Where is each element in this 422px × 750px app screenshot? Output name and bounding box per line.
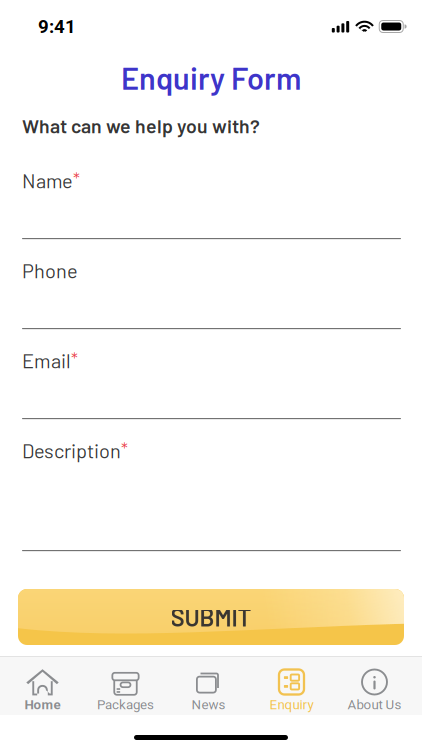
button[interactable]: SUBMIT <box>18 589 404 645</box>
staticText: 9:41 <box>38 16 76 37</box>
staticText: Packages <box>97 697 154 713</box>
staticText: Name <box>22 168 73 192</box>
staticText: Enquiry <box>269 697 313 713</box>
staticText: Description <box>22 438 121 462</box>
staticText: Email <box>22 348 71 372</box>
staticText: * <box>121 438 128 459</box>
button[interactable]: Packages <box>84 657 167 715</box>
staticText: News <box>191 697 225 713</box>
staticText: SUBMIT <box>170 603 251 631</box>
staticText: Enquiry Form <box>121 59 301 96</box>
button[interactable]: Home <box>1 657 84 715</box>
staticText: About Us <box>347 697 401 713</box>
staticText: Phone <box>22 258 78 282</box>
button[interactable]: News <box>167 657 250 715</box>
staticText: * <box>71 348 78 369</box>
staticText: Home <box>24 697 60 713</box>
button[interactable]: About Us <box>333 657 416 715</box>
staticText: * <box>73 168 80 189</box>
button[interactable]: Enquiry <box>250 657 333 715</box>
staticText: What can we help you with? <box>22 114 260 137</box>
